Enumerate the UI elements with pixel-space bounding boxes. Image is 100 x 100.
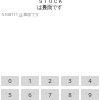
button[interactable]: 1 [21,76,39,86]
staticText: 3 [68,77,72,85]
button[interactable]: 0 [1,76,19,86]
button[interactable]: 8 [61,89,79,100]
staticText: 9 [88,91,92,99]
button[interactable]: 4 [81,76,99,86]
staticText: 1 [28,77,32,85]
button[interactable]: 5 [1,89,19,100]
button[interactable]: 9 [81,89,99,100]
staticText: 4 [88,77,92,85]
button[interactable]: 2 [41,76,59,86]
button[interactable]: 7 [41,89,59,100]
staticText: 6 [28,91,32,99]
staticText: 5 [8,91,12,99]
staticText: 8 [68,91,72,99]
staticText: 2 [48,77,52,85]
button[interactable]: 6 [21,89,39,100]
button[interactable]: 3 [61,76,79,86]
staticText: ＳＴＯＣＫ [38,0,63,4]
staticText: 7 [48,91,52,99]
staticText: 5108111 は裏面です [2,12,40,17]
staticText: は裏面です [37,4,63,10]
staticText: 0 [8,77,12,85]
